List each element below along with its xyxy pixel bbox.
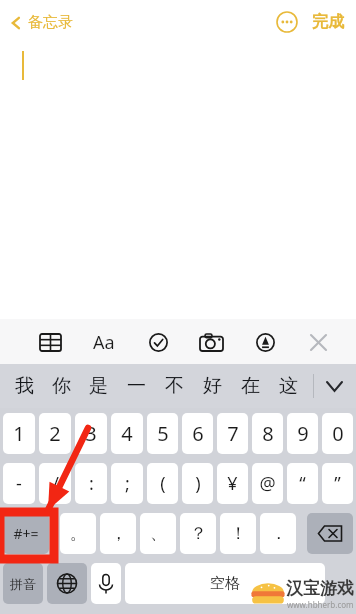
button[interactable]: #+= [3,513,49,554]
button[interactable]: 3 [75,413,107,454]
button[interactable]: ． [260,513,296,554]
staticText: 5 [157,420,169,447]
staticText: 0 [332,420,344,447]
button[interactable]: 2 [39,413,71,454]
button[interactable]: More options [276,11,298,33]
button[interactable]: 4 [111,413,143,454]
button[interactable]: : [75,463,107,504]
staticText: ) [195,471,201,496]
staticText: 9 [297,420,309,447]
staticText: : [89,471,94,496]
staticText: 6 [192,420,204,447]
button[interactable]: ; [111,463,143,504]
button[interactable]: 备忘录 [8,13,73,32]
button[interactable]: 好 [193,364,231,408]
button[interactable]: - [3,463,35,504]
staticText: 是 [89,374,108,398]
staticText: ; [125,471,130,496]
button[interactable]: 8 [252,413,283,454]
staticText: 你 [52,374,71,398]
staticText: 拼音 [10,576,36,592]
staticText: 汉宝游戏 [286,578,354,599]
staticText: #+= [13,524,39,543]
staticText: 好 [203,374,222,398]
staticText: 完成 [312,12,344,32]
staticText: 空格 [210,574,240,593]
button[interactable]: 拼音 [3,563,43,604]
staticText: ¥ [227,471,238,496]
staticText: 、 [150,523,167,544]
staticText: 一 [127,374,146,398]
staticText: 3 [85,420,97,447]
button[interactable]: Backspace [307,513,353,554]
button[interactable]: ， [100,513,136,554]
button[interactable]: 是 [80,364,117,408]
staticText: 8 [262,420,274,447]
staticText: - [16,471,22,496]
staticText: 我 [15,374,34,398]
staticText: ． [270,523,287,544]
button[interactable]: 5 [147,413,178,454]
button[interactable]: Close keyboard [302,326,334,358]
button[interactable]: ！ [220,513,256,554]
staticText: 不 [165,374,184,398]
button[interactable]: 空格 [125,563,325,604]
button[interactable]: 0 [322,413,353,454]
button[interactable]: 。 [60,513,96,554]
button[interactable]: @ [252,463,283,504]
button[interactable]: “ [287,463,318,504]
staticText: 2 [49,420,61,447]
button[interactable]: 、 [140,513,176,554]
button[interactable]: Camera [194,325,228,359]
staticText: ！ [230,523,247,544]
staticText: / [52,471,59,496]
button[interactable]: Voice input [91,563,121,604]
staticText: ” [334,471,341,496]
button[interactable]: 你 [43,364,80,408]
button[interactable]: 不 [155,364,193,408]
button[interactable]: 我 [6,364,43,408]
button[interactable]: ？ [180,513,216,554]
button[interactable]: 一 [117,364,155,408]
staticText: “ [299,471,306,496]
button[interactable]: ” [322,463,353,504]
button[interactable]: ( [147,463,178,504]
staticText: 4 [121,420,133,447]
button[interactable]: Switch keyboard [47,563,87,604]
staticText: 1 [13,420,25,447]
staticText: 在 [241,374,260,398]
staticText: 。 [70,523,87,544]
button[interactable]: 这 [269,364,307,408]
staticText: 7 [227,420,239,447]
button[interactable]: 1 [3,413,35,454]
staticText: @ [259,471,276,496]
staticText: ？ [190,523,207,544]
staticText: www.hbherb.com [287,599,354,610]
button[interactable]: 完成 [312,12,344,32]
button[interactable]: Hide suggestions [313,364,356,408]
button[interactable]: Table [34,326,66,358]
button[interactable]: Aa [87,325,121,359]
staticText: ( [160,471,166,496]
button[interactable]: Markup [249,326,281,358]
button[interactable]: 7 [217,413,248,454]
staticText: 备忘录 [28,13,73,32]
button[interactable]: 在 [231,364,269,408]
staticText: 这 [279,374,298,398]
button[interactable]: 6 [182,413,213,454]
staticText: Aa [93,330,115,355]
button[interactable]: ¥ [217,463,248,504]
staticText: ， [110,523,127,544]
button[interactable]: 9 [287,413,318,454]
button[interactable]: Checklist [142,326,174,358]
button[interactable]: / [39,463,71,504]
button[interactable]: ) [182,463,213,504]
